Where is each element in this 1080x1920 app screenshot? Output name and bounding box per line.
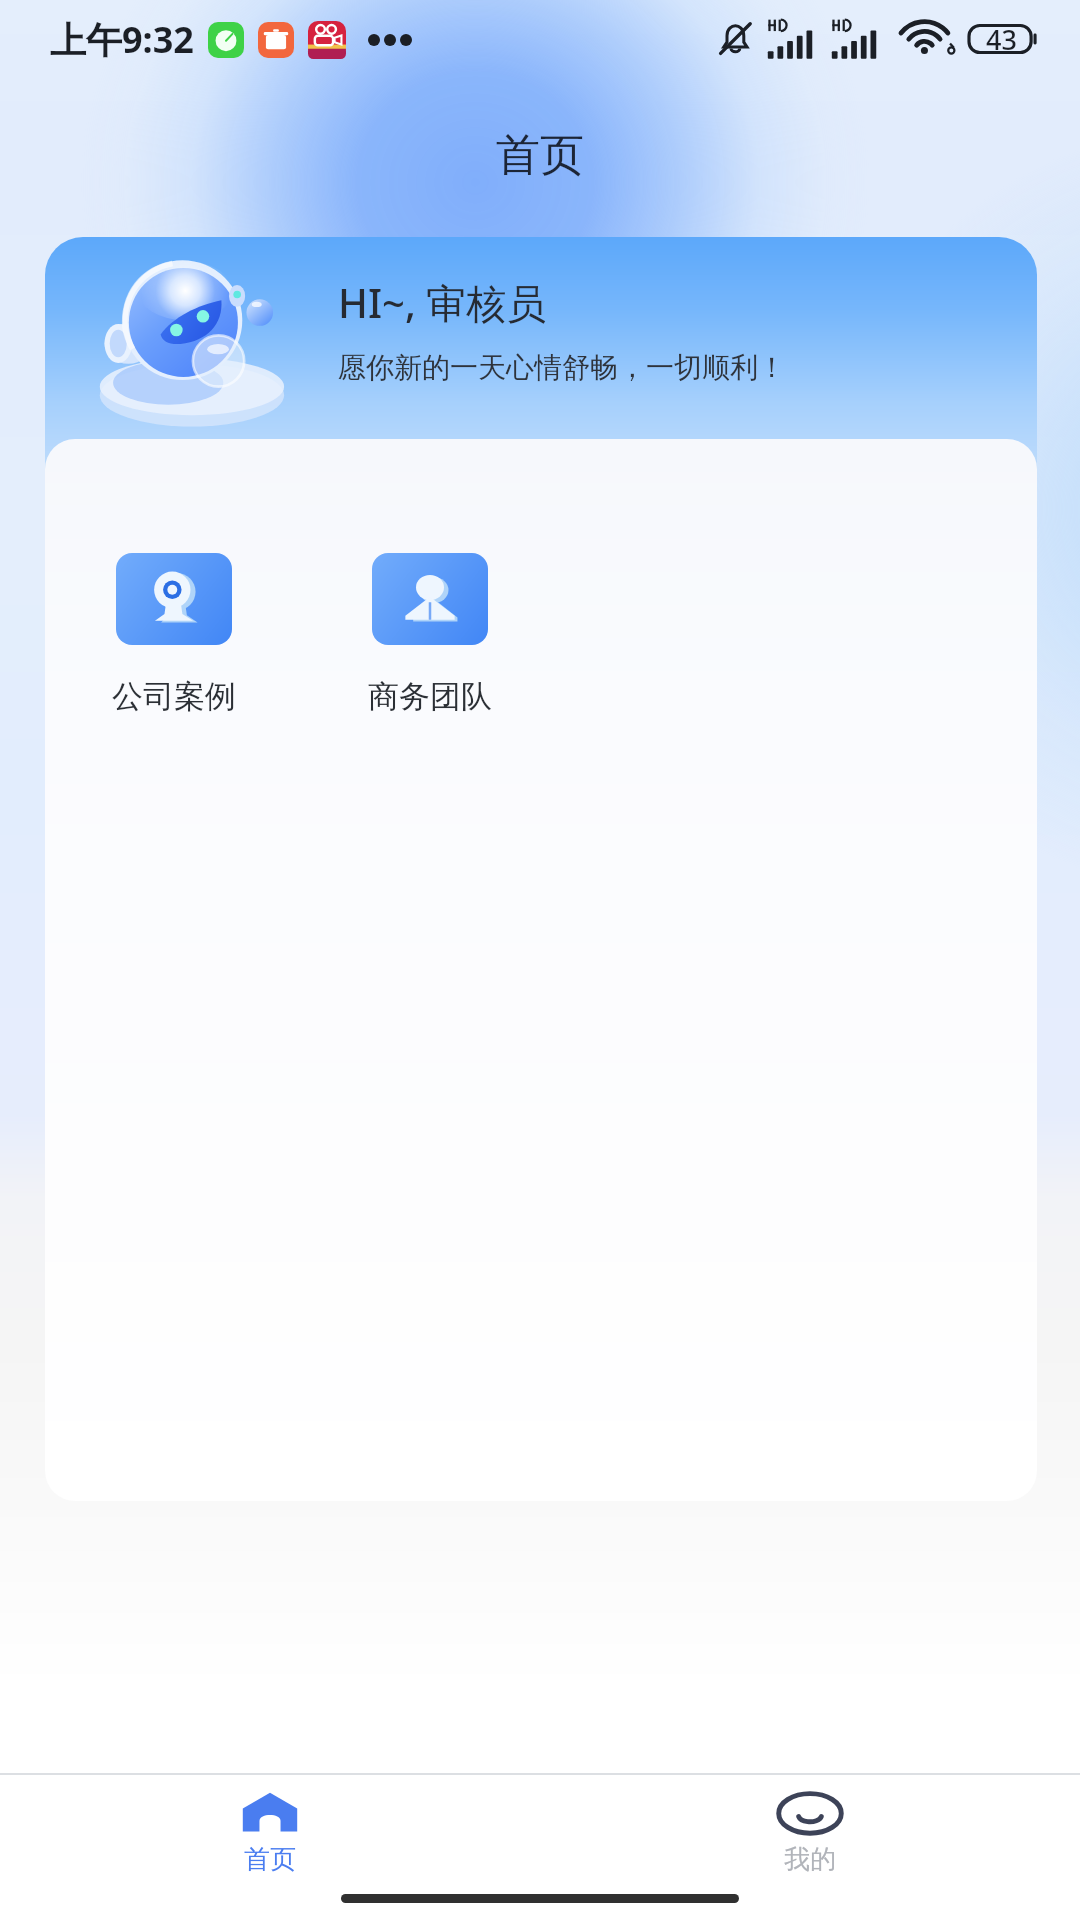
- staticText: 愿你新的一天心情舒畅，一切顺利！: [338, 350, 786, 385]
- button[interactable]: 商务团队: [368, 553, 492, 716]
- staticText: 首页: [244, 1843, 296, 1876]
- staticText: 公司案例: [112, 677, 236, 716]
- staticText: 上午9:32: [50, 15, 194, 64]
- staticText: 43: [986, 21, 1017, 58]
- button[interactable]: 首页: [180, 1791, 360, 1891]
- button[interactable]: 公司案例: [112, 553, 236, 716]
- staticText: 商务团队: [368, 677, 492, 716]
- staticText: HI~, 审核员: [338, 275, 547, 330]
- staticText: 我的: [784, 1843, 836, 1876]
- staticText: 首页: [496, 128, 584, 183]
- button[interactable]: 我的: [720, 1791, 900, 1891]
